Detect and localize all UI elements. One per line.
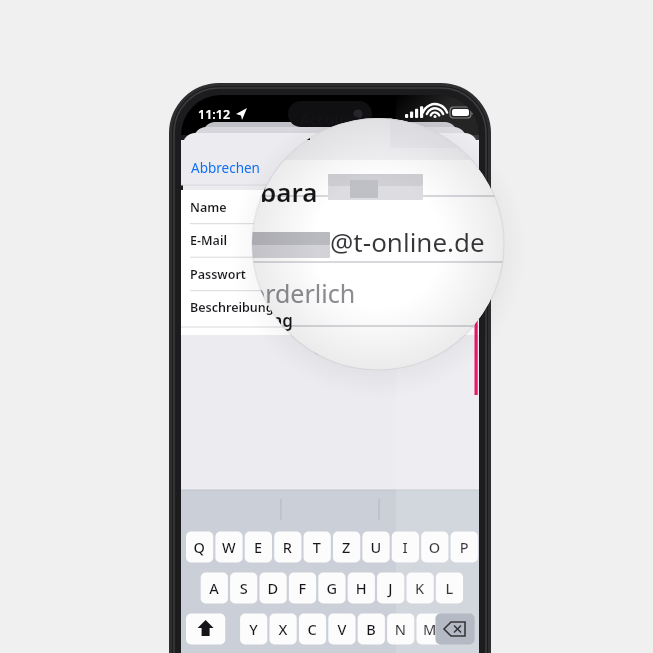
button[interactable] <box>186 295 486 328</box>
button[interactable] <box>188 147 268 173</box>
button[interactable] <box>186 262 486 295</box>
button[interactable]: Löschen <box>440 604 476 636</box>
button[interactable] <box>186 229 486 262</box>
button[interactable] <box>186 196 486 229</box>
button[interactable]: Umschalttaste <box>182 604 218 636</box>
